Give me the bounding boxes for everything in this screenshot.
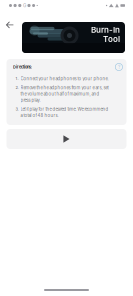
staticText: Let it play for the desired time. We rec…: [20, 107, 108, 118]
staticText: ?: [118, 64, 120, 70]
staticText: Tool: [103, 34, 120, 44]
staticText: Directions:: [13, 65, 32, 69]
staticText: 2.: [15, 85, 18, 90]
button[interactable]: Play: [6, 129, 126, 149]
staticText: 1.: [15, 76, 18, 81]
staticText: Remove the headphones from your ears, se…: [20, 85, 108, 103]
staticText: 3.: [15, 107, 18, 111]
button[interactable]: Back: [0, 16, 19, 34]
staticText: Burn-In: [91, 25, 120, 35]
staticText: G: [23, 3, 26, 8]
button[interactable]: Help: [115, 63, 122, 71]
staticText: Connect your headphones to your phone.: [20, 76, 108, 81]
